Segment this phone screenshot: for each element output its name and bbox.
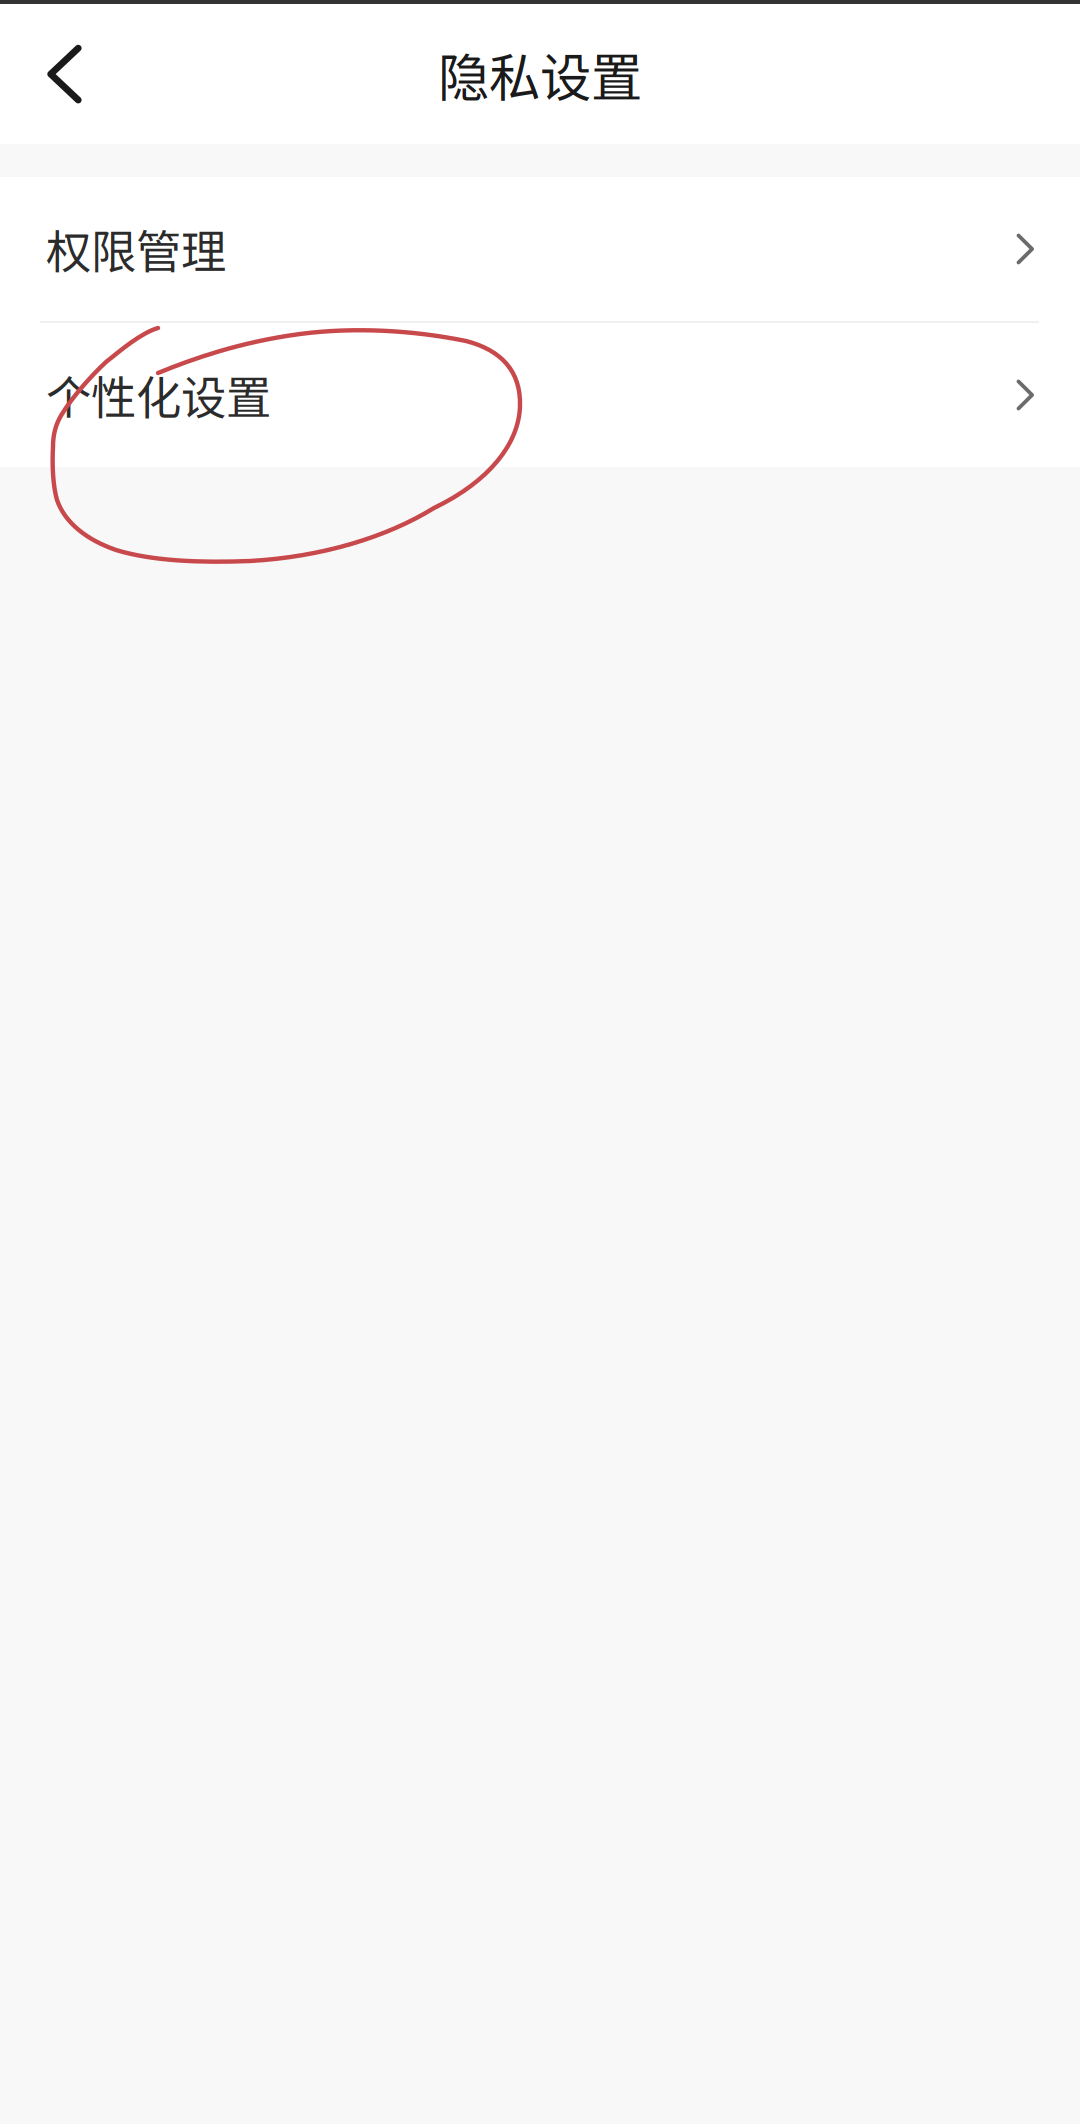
button[interactable]: 个性化设置 — [0, 323, 1080, 467]
staticText: 个性化设置 — [46, 362, 271, 428]
button[interactable]: 权限管理 — [0, 177, 1080, 321]
staticText: 隐私设置 — [438, 37, 642, 111]
staticText: 权限管理 — [46, 216, 226, 282]
button[interactable]: Back — [0, 4, 112, 144]
